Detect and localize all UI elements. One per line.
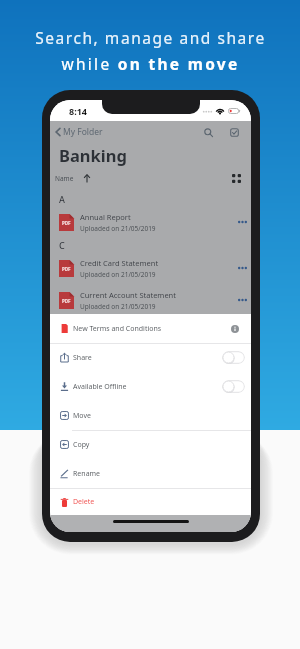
button[interactable] [222,351,245,364]
button[interactable]: Available Offline [50,372,251,401]
staticText: My Folder [63,126,103,138]
button[interactable]: Search [201,125,215,139]
staticText: Credit Card Statement [80,258,159,268]
button[interactable]: New Terms and Conditions [50,314,251,343]
staticText: Banking [59,144,127,166]
button[interactable]: Share [50,343,251,372]
staticText: Move [73,411,91,421]
staticText: Uploaded on 21/05/2019 [80,224,156,233]
button[interactable]: PDF [50,206,251,238]
button[interactable]: Copy [50,430,251,459]
button[interactable]: Delete [50,488,251,516]
button[interactable]: Select items [227,125,241,139]
staticText: New Terms and Conditions [73,324,162,334]
staticText: Available Offline [73,382,127,392]
staticText: Copy [73,440,90,450]
staticText: Current Account Statement [80,290,176,300]
staticText: C [59,239,65,251]
button[interactable]: Name [50,172,96,185]
staticText: Share [73,353,92,363]
staticText: Uploaded on 21/05/2019 [80,270,156,279]
button[interactable]: My Folder [50,124,109,140]
button[interactable]: More options [235,293,249,307]
staticText: 8:14 [69,105,87,117]
staticText: while on the move [61,53,240,74]
button[interactable]: Info [228,322,242,336]
button[interactable]: Move [50,401,251,430]
button[interactable]: Grid view [229,171,243,185]
button[interactable]: PDF [50,252,251,284]
button[interactable]: More options [235,215,249,229]
staticText: Name [55,174,74,183]
staticText: Annual Report [80,212,131,222]
staticText: Delete [73,497,95,507]
staticText: Search, manage and share [35,27,266,48]
staticText: Rename [73,469,101,479]
staticText: PDF [62,298,71,304]
staticText: A [59,193,65,205]
staticText: PDF [62,266,71,272]
button[interactable] [222,380,245,393]
staticText: Uploaded on 21/05/2019 [80,302,156,311]
button[interactable]: More options [235,261,249,275]
button[interactable]: Rename [50,459,251,488]
staticText: PDF [62,220,71,226]
button[interactable]: PDF [50,284,251,316]
